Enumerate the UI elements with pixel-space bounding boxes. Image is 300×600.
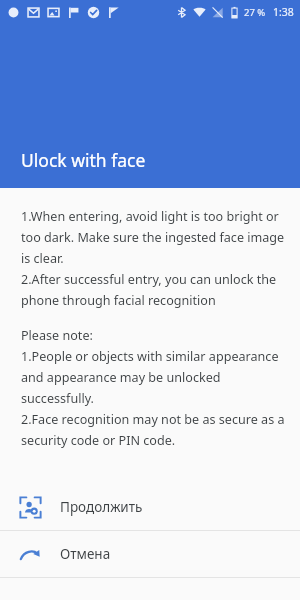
staticText: Please note: 1.People or objects with si… [21,327,286,449]
staticText: 27 % [244,6,266,19]
staticText: 1.When entering, avoid light is too brig… [21,208,286,309]
other: Cancel [19,543,42,566]
other: Continue [19,496,42,519]
staticText: Продолжить [60,498,143,516]
staticText: Ulock with face [21,148,146,172]
button[interactable]: Continue [0,484,300,530]
button[interactable]: Cancel [0,531,300,577]
staticText: 1:38 [273,5,294,19]
staticText: Отмена [60,545,111,563]
